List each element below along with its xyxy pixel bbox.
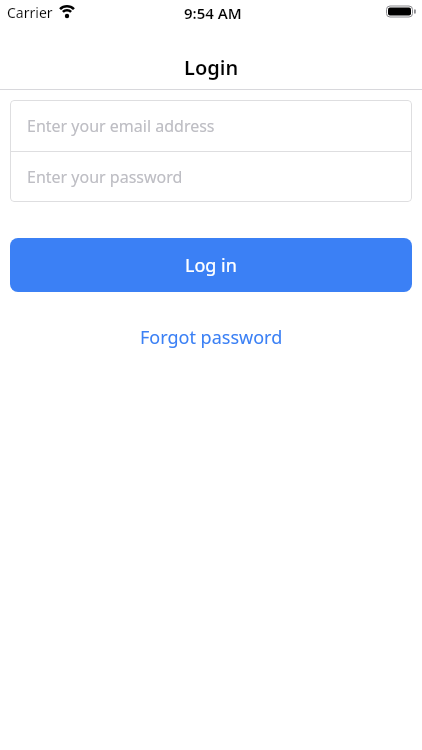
staticText: Enter your email address — [27, 115, 215, 137]
staticText: Log in — [185, 253, 237, 278]
button[interactable]: Forgot password — [140, 325, 283, 350]
staticText: Login — [184, 54, 239, 81]
button[interactable]: Log in — [10, 238, 412, 292]
button[interactable]: Enter your email address — [10, 100, 412, 151]
staticText: 9:54 AM — [184, 3, 242, 23]
staticText: Carrier — [7, 3, 53, 22]
staticText: Enter your password — [27, 166, 183, 188]
button[interactable]: Enter your password — [10, 152, 412, 202]
